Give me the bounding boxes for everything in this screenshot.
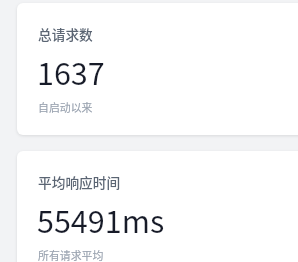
button[interactable]: 平均响应时间: [17, 151, 298, 262]
staticText: 55491ms: [37, 198, 165, 242]
button[interactable]: 总请求数: [17, 3, 298, 135]
staticText: 所有请求平均: [38, 247, 104, 262]
staticText: 平均响应时间: [38, 172, 121, 192]
staticText: 1637: [37, 50, 105, 94]
staticText: 自启动以来: [38, 99, 93, 115]
staticText: 总请求数: [38, 24, 93, 44]
